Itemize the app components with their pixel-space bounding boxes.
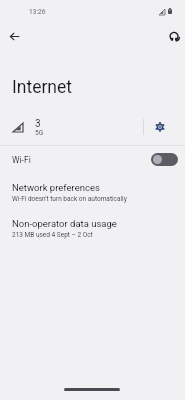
staticText: 5G xyxy=(35,129,44,137)
staticText: Network preferences xyxy=(12,182,100,193)
button[interactable]: Wi-Fi xyxy=(0,146,185,173)
staticText: Internet xyxy=(12,77,73,98)
button[interactable]: Non-operator data usage xyxy=(0,215,185,249)
button[interactable]: Wi-Fi toggle, off xyxy=(151,153,178,166)
button[interactable]: Help and support xyxy=(159,22,185,51)
staticText: 3 xyxy=(35,118,41,130)
button[interactable]: Network preferences xyxy=(0,179,185,213)
staticText: Non-operator data usage xyxy=(12,218,117,229)
staticText: 13:26 xyxy=(29,8,46,16)
button[interactable]: Network settings xyxy=(145,112,175,142)
staticText: Wi-Fi xyxy=(12,155,31,165)
staticText: 213 MB used 4 Sept – 2 Oct xyxy=(12,231,93,239)
button[interactable]: Back xyxy=(0,22,28,51)
staticText: Wi-Fi doesn't turn back on automatically xyxy=(12,195,127,203)
